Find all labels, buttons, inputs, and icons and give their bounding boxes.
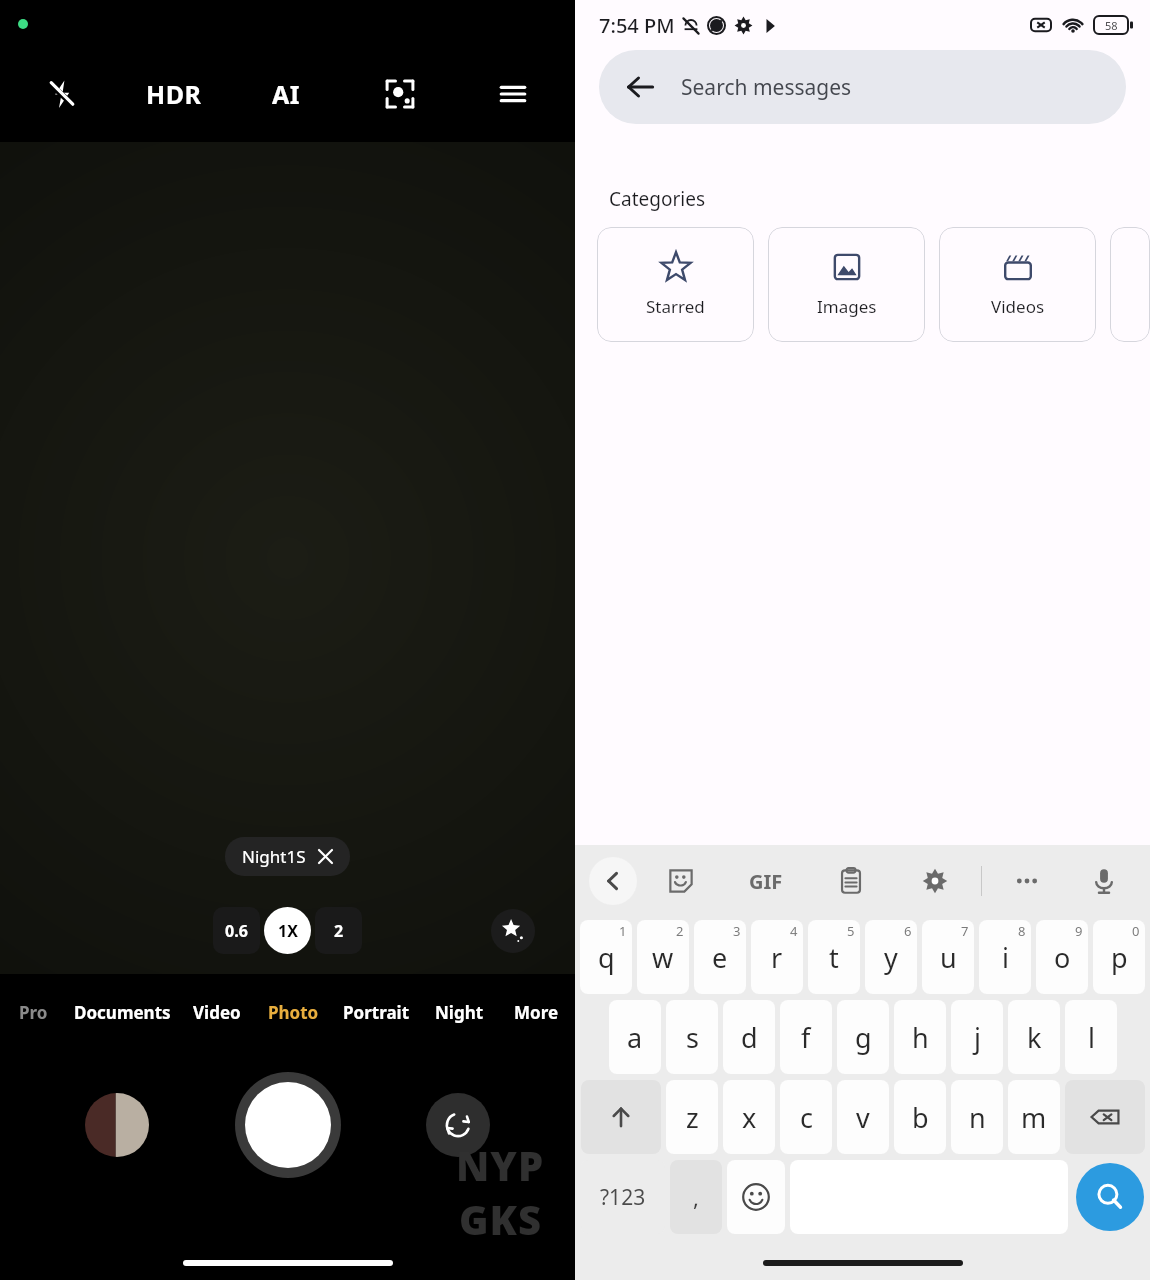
- button[interactable]: HDR: [118, 46, 230, 142]
- staticText: l: [1088, 1019, 1095, 1056]
- button[interactable]: [581, 1080, 661, 1154]
- other: Back: [625, 72, 655, 102]
- button[interactable]: f: [780, 1000, 832, 1074]
- button[interactable]: g: [837, 1000, 889, 1074]
- staticText: 0.6: [225, 920, 248, 942]
- button[interactable]: Documents: [66, 974, 178, 1050]
- button[interactable]: Night: [421, 974, 498, 1050]
- button[interactable]: t: [808, 920, 860, 994]
- button[interactable]: l: [1065, 1000, 1117, 1074]
- button[interactable]: k: [1008, 1000, 1060, 1074]
- button[interactable]: Clipboard: [826, 856, 876, 906]
- staticText: q: [598, 939, 615, 976]
- button[interactable]: v: [837, 1080, 889, 1154]
- staticText: s: [686, 1019, 699, 1056]
- button[interactable]: o: [1036, 920, 1088, 994]
- button[interactable]: Images: [768, 227, 925, 342]
- button[interactable]: Emoji: [727, 1160, 785, 1234]
- staticText: 6: [904, 922, 912, 940]
- staticText: Videos: [991, 295, 1045, 318]
- button[interactable]: d: [723, 1000, 775, 1074]
- staticText: 0: [1132, 922, 1140, 940]
- staticText: Night: [435, 1001, 484, 1024]
- staticText: 8: [1018, 922, 1026, 940]
- button[interactable]: Portrait: [332, 974, 421, 1050]
- button[interactable]: Starred: [597, 227, 754, 342]
- button[interactable]: y: [865, 920, 917, 994]
- button[interactable]: ,: [670, 1160, 722, 1234]
- button[interactable]: w: [637, 920, 689, 994]
- button[interactable]: Videos: [939, 227, 1096, 342]
- button[interactable]: More options: [1003, 857, 1051, 905]
- staticText: More: [514, 1001, 559, 1024]
- button[interactable]: i: [979, 920, 1031, 994]
- staticText: 7: [961, 922, 969, 940]
- button[interactable]: j: [951, 1000, 1003, 1074]
- button[interactable]: z: [666, 1080, 718, 1154]
- button[interactable]: AI: [230, 46, 343, 142]
- staticText: n: [969, 1099, 986, 1136]
- button[interactable]: 2: [315, 907, 362, 954]
- staticText: y: [884, 939, 898, 976]
- button[interactable]: ?123: [581, 1160, 665, 1234]
- button[interactable]: n: [951, 1080, 1003, 1154]
- staticText: Photo: [268, 1001, 319, 1024]
- button[interactable]: More settings: [456, 46, 569, 142]
- button[interactable]: Shutter: [235, 1072, 341, 1178]
- button[interactable]: c: [780, 1080, 832, 1154]
- staticText: 1: [619, 922, 627, 940]
- button[interactable]: x: [723, 1080, 775, 1154]
- button[interactable]: Flash off: [6, 46, 118, 142]
- staticText: g: [855, 1019, 872, 1056]
- button[interactable]: Lens scan: [343, 46, 456, 142]
- staticText: Images: [817, 295, 877, 318]
- button[interactable]: Pro: [0, 974, 66, 1050]
- button[interactable]: Stickers: [656, 856, 706, 906]
- button[interactable]: 1X: [264, 907, 311, 954]
- button[interactable]: 0.6: [213, 907, 260, 954]
- staticText: 5: [847, 922, 855, 940]
- staticText: t: [829, 939, 839, 976]
- button[interactable]: m: [1008, 1080, 1060, 1154]
- button[interactable]: Video: [178, 974, 255, 1050]
- staticText: ?123: [600, 1183, 646, 1212]
- button[interactable]: h: [894, 1000, 946, 1074]
- staticText: 7:54 PM: [599, 12, 675, 39]
- button[interactable]: s: [666, 1000, 718, 1074]
- button[interactable]: [1065, 1080, 1145, 1154]
- staticText: z: [686, 1099, 699, 1136]
- button[interactable]: Back: [589, 857, 637, 905]
- button[interactable]: Search: [1076, 1163, 1144, 1231]
- button[interactable]: Switch camera: [426, 1093, 490, 1157]
- button[interactable]: Back: [599, 50, 1126, 124]
- button[interactable]: Magic / filters: [491, 909, 535, 953]
- staticText: Search messages: [681, 73, 852, 102]
- staticText: k: [1027, 1019, 1042, 1056]
- button[interactable]: GIF: [740, 855, 792, 907]
- button[interactable]: Photo: [255, 974, 332, 1050]
- staticText: e: [712, 939, 728, 976]
- staticText: 58: [1105, 18, 1118, 33]
- button[interactable]: Night1S: [225, 837, 350, 876]
- button[interactable]: q: [580, 920, 632, 994]
- staticText: u: [940, 939, 957, 976]
- button[interactable]: b: [894, 1080, 946, 1154]
- staticText: b: [912, 1099, 929, 1136]
- staticText: Documents: [74, 1001, 171, 1024]
- button[interactable]: u: [922, 920, 974, 994]
- button[interactable]: Voice input: [1079, 856, 1129, 906]
- button[interactable]: Gallery: [85, 1093, 149, 1157]
- button[interactable]: [1110, 227, 1150, 342]
- button[interactable]: More: [498, 974, 575, 1050]
- staticText: p: [1111, 939, 1128, 976]
- button[interactable]: e: [694, 920, 746, 994]
- staticText: AI: [272, 77, 301, 111]
- staticText: w: [652, 939, 674, 976]
- button[interactable]: r: [751, 920, 803, 994]
- staticText: c: [800, 1099, 813, 1136]
- button[interactable]: Settings: [910, 856, 960, 906]
- button[interactable]: p: [1093, 920, 1145, 994]
- button[interactable]: a: [609, 1000, 661, 1074]
- staticText: 2: [676, 922, 684, 940]
